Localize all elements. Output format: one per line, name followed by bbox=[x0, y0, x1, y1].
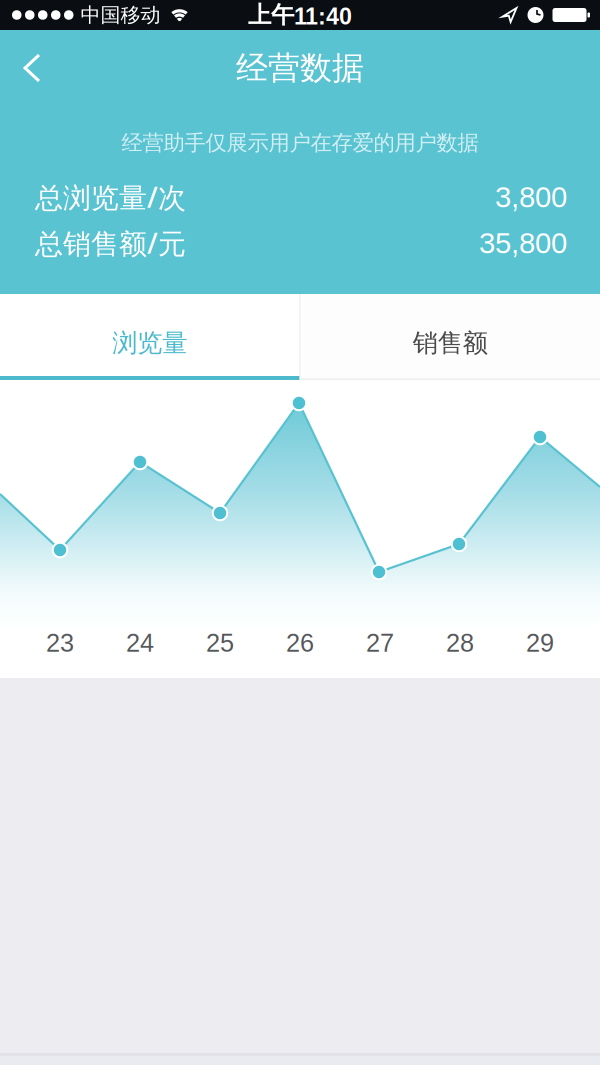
staticText: 总销售额/元 bbox=[35, 224, 186, 262]
button[interactable]: Back bbox=[0, 52, 59, 78]
staticText: 经营助手仅展示用户在存爱的用户数据 bbox=[121, 130, 478, 156]
staticText: 销售额 bbox=[413, 327, 488, 358]
staticText: 27 bbox=[366, 629, 394, 657]
staticText: 23 bbox=[46, 629, 74, 657]
button[interactable]: 浏览量 bbox=[0, 294, 299, 380]
staticText: 总浏览量/次 bbox=[35, 178, 186, 216]
staticText: 26 bbox=[286, 629, 314, 657]
staticText: 29 bbox=[526, 629, 554, 657]
staticText: 24 bbox=[126, 629, 154, 657]
staticText: 上午11:40 bbox=[248, 0, 352, 30]
staticText: 经营数据 bbox=[236, 48, 364, 88]
staticText: 中国移动 bbox=[80, 3, 160, 27]
staticText: 浏览量 bbox=[112, 327, 187, 358]
button[interactable]: 销售额 bbox=[300, 294, 600, 380]
staticText: 35,800 bbox=[479, 227, 567, 259]
staticText: 3,800 bbox=[495, 181, 567, 213]
staticText: 28 bbox=[446, 629, 474, 657]
staticText: 25 bbox=[206, 629, 234, 657]
